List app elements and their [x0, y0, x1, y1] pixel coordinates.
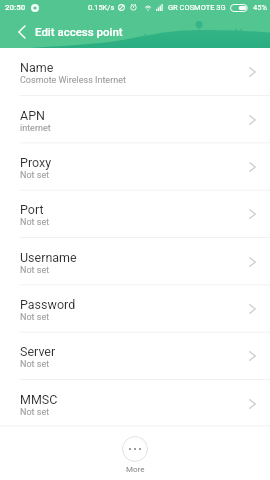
staticText: GR COSMOTE 3G — [168, 3, 226, 12]
staticText: Not set — [20, 265, 50, 276]
button[interactable]: Username — [0, 238, 270, 285]
button[interactable]: Back — [0, 15, 35, 48]
button[interactable]: MMSC — [0, 380, 270, 427]
staticText: Name — [20, 60, 54, 75]
button[interactable]: APN — [0, 96, 270, 143]
staticText: Cosmote Wireless Internet — [20, 75, 126, 86]
staticText: MMSC — [20, 392, 58, 407]
staticText: Not set — [20, 359, 50, 370]
staticText: internet — [20, 123, 51, 134]
staticText: More — [126, 465, 145, 474]
staticText: Proxy — [20, 155, 52, 170]
staticText: 20:50 — [5, 3, 26, 12]
staticText: Not set — [20, 217, 50, 228]
staticText: APN — [20, 108, 45, 123]
button[interactable]: Password — [0, 285, 270, 332]
staticText: Server — [20, 344, 56, 359]
staticText: Edit access point — [35, 25, 123, 38]
button[interactable]: More — [0, 426, 270, 480]
staticText: 0.15K/s — [88, 3, 115, 12]
button[interactable]: Server — [0, 332, 270, 379]
staticText: Not set — [20, 407, 50, 418]
staticText: Port — [20, 202, 44, 217]
staticText: 45% — [253, 3, 267, 12]
button[interactable]: Port — [0, 190, 270, 237]
staticText: Not set — [20, 312, 50, 323]
staticText: Not set — [20, 170, 50, 181]
staticText: Password — [20, 297, 76, 312]
staticText: Username — [20, 250, 77, 265]
button[interactable]: Proxy — [0, 143, 270, 190]
button[interactable]: Name — [0, 48, 270, 95]
